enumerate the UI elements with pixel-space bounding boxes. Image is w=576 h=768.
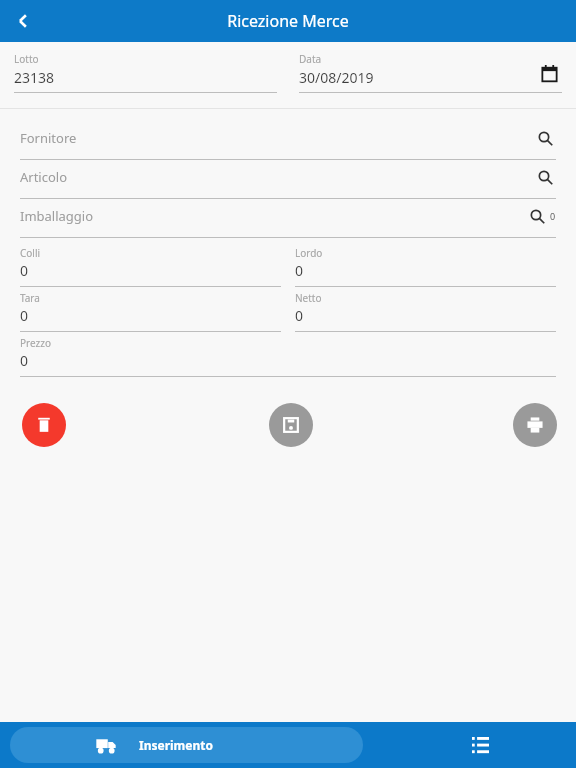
staticText: Imballaggio [20, 207, 94, 225]
button[interactable]: Save [269, 403, 313, 447]
button[interactable]: Data [299, 52, 562, 93]
button[interactable]: Delete [22, 403, 66, 447]
staticText: 0 [295, 261, 304, 280]
staticText: 0 [20, 261, 29, 280]
staticText: 23138 [14, 68, 55, 87]
button[interactable]: Prezzo [20, 332, 556, 377]
staticText: Fornitore [20, 129, 77, 147]
button[interactable]: Lotto [14, 52, 277, 93]
button[interactable]: Fornitore [20, 121, 556, 160]
button[interactable]: Articolo [20, 160, 556, 199]
staticText: Inserimento [139, 737, 213, 753]
button[interactable]: Inserimento [10, 727, 363, 763]
button[interactable]: Imballaggio [20, 199, 556, 238]
staticText: Articolo [20, 168, 68, 186]
button[interactable]: Colli [20, 242, 281, 287]
button[interactable]: Lordo [295, 242, 556, 287]
staticText: Lordo [295, 246, 323, 260]
button[interactable]: Back [6, 4, 40, 38]
button[interactable]: List [462, 727, 498, 763]
staticText: Ricezione Merce [227, 10, 349, 32]
button[interactable]: Pick date [536, 60, 562, 86]
staticText: Lotto [14, 52, 39, 66]
button[interactable]: Print [513, 403, 557, 447]
button[interactable]: Search Articolo [534, 166, 556, 188]
staticText: 0 [20, 351, 29, 370]
staticText: Tara [20, 291, 40, 305]
staticText: Colli [20, 246, 41, 260]
button[interactable]: Search Fornitore [534, 127, 556, 149]
staticText: 0 [295, 306, 304, 325]
button[interactable]: Netto [295, 287, 556, 332]
button[interactable]: Tara [20, 287, 281, 332]
staticText: 0 [550, 210, 556, 222]
button[interactable]: Search Imballaggio [526, 205, 548, 227]
staticText: 30/08/2019 [299, 68, 374, 87]
staticText: Data [299, 52, 322, 66]
staticText: Prezzo [20, 336, 51, 350]
staticText: 0 [20, 306, 29, 325]
staticText: Netto [295, 291, 322, 305]
